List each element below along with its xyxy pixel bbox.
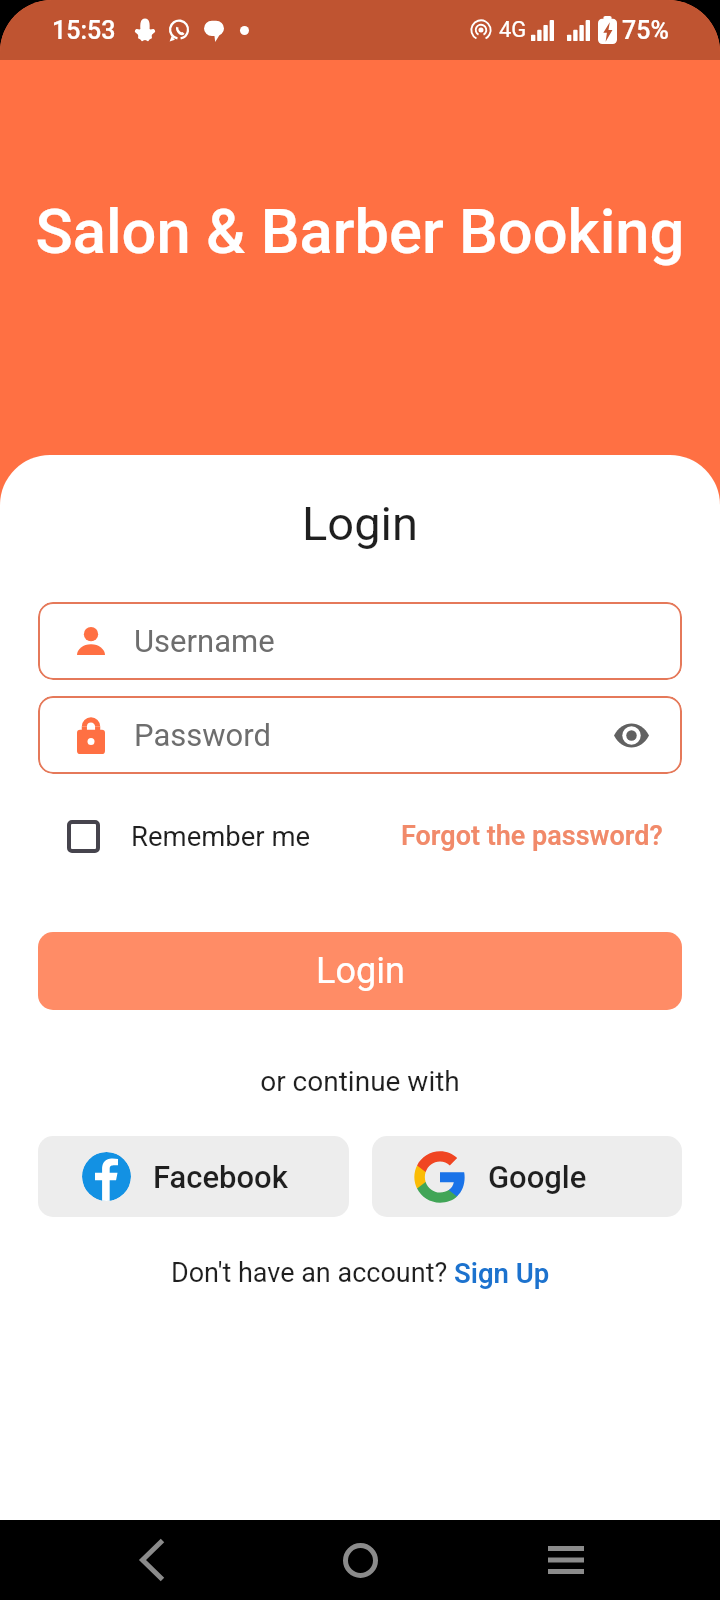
button[interactable]: Username xyxy=(38,602,682,680)
button[interactable]: Recent apps xyxy=(496,1520,636,1600)
staticText: Login xyxy=(0,496,720,551)
button[interactable]: Sign Up xyxy=(454,1257,550,1289)
button[interactable]: Home xyxy=(290,1520,430,1600)
button[interactable]: Google xyxy=(372,1136,682,1217)
staticText: 75% xyxy=(622,16,669,45)
staticText: Sign Up xyxy=(454,1257,550,1289)
staticText: Salon & Barber Booking xyxy=(0,196,720,268)
staticText: Don't have an account? xyxy=(171,1257,454,1289)
button[interactable]: Show password xyxy=(609,713,653,757)
staticText: Remember me xyxy=(131,820,311,852)
button[interactable]: Back xyxy=(82,1520,222,1600)
button[interactable]: Password xyxy=(38,696,682,774)
staticText: Login xyxy=(316,950,405,992)
button[interactable]: Login xyxy=(38,932,682,1010)
staticText: Google xyxy=(488,1159,587,1195)
button[interactable]: Remember me xyxy=(67,816,311,856)
staticText: Username xyxy=(134,623,275,659)
staticText: 4G xyxy=(499,17,527,43)
staticText: Password xyxy=(134,717,271,753)
staticText: Forgot the password? xyxy=(401,820,663,852)
staticText: or continue with xyxy=(0,1065,720,1098)
staticText: 15:53 xyxy=(52,16,116,45)
staticText: Facebook xyxy=(153,1159,288,1195)
button[interactable]: Forgot the password? xyxy=(401,816,663,856)
button[interactable]: Facebook xyxy=(38,1136,349,1217)
